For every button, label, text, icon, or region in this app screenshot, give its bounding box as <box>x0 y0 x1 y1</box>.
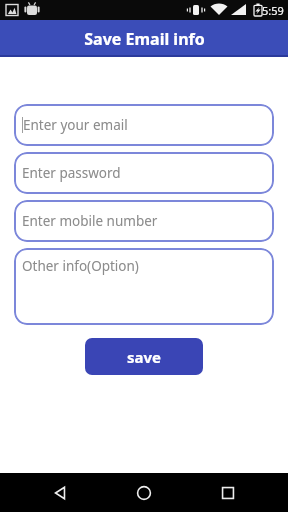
button[interactable]: Back <box>36 473 84 512</box>
staticText: save <box>127 347 162 367</box>
button[interactable]: Other info(Option) <box>14 248 274 325</box>
staticText: Other info(Option) <box>22 257 139 275</box>
staticText: Save Email info <box>84 28 205 50</box>
button[interactable]: Enter password <box>14 152 274 194</box>
staticText: Enter mobile number <box>22 212 158 230</box>
button[interactable]: Enter your email <box>14 104 274 146</box>
button[interactable]: Home <box>120 473 168 512</box>
staticText: Enter password <box>22 164 121 182</box>
staticText: 5:59 <box>262 3 284 18</box>
button[interactable]: Enter mobile number <box>14 200 274 242</box>
staticText: Enter your email <box>23 116 128 134</box>
button[interactable]: Recent apps <box>204 473 252 512</box>
button[interactable]: save <box>85 338 203 375</box>
